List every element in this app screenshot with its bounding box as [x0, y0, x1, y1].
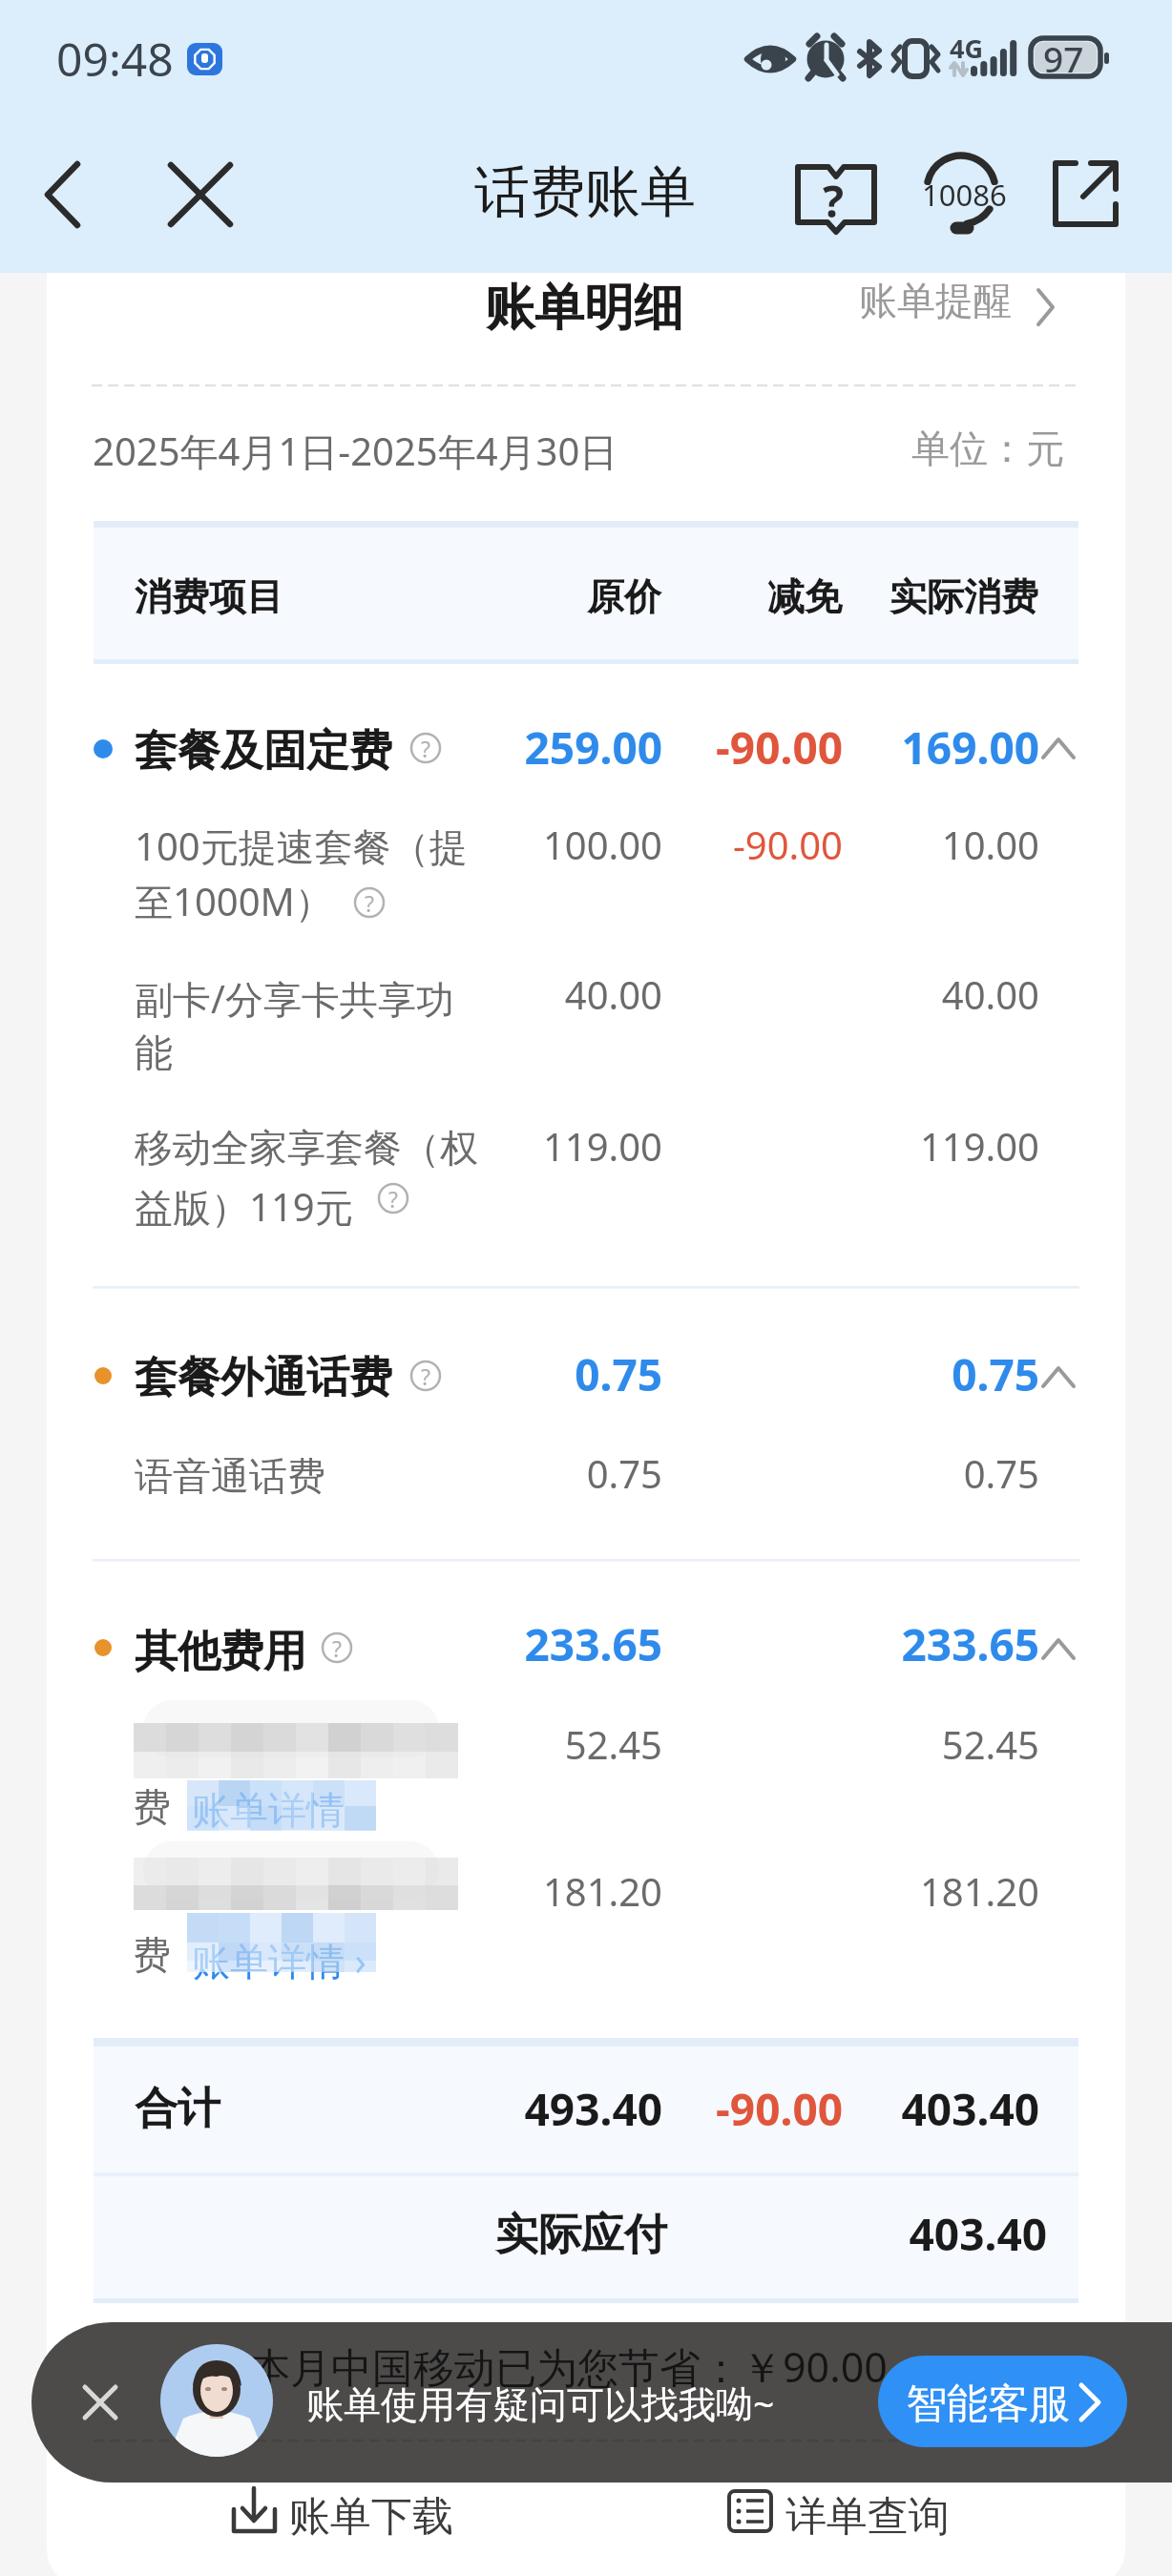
- staticText: 233.65: [524, 1614, 662, 1674]
- staticText: 减免: [767, 573, 842, 620]
- staticText: ?: [388, 1184, 398, 1213]
- staticText: 52.45: [941, 1718, 1039, 1770]
- staticText: 0.75: [963, 1447, 1039, 1499]
- staticText: 52.45: [564, 1718, 662, 1770]
- staticText: 403.40: [909, 2204, 1047, 2264]
- staticText: 09:48: [56, 28, 174, 90]
- staticText: 本月中国移动已为您节省：￥90.00: [249, 2338, 888, 2395]
- button[interactable]: [94, 1595, 1078, 1691]
- staticText: ?: [823, 171, 844, 231]
- staticText: 0.75: [952, 1344, 1039, 1404]
- staticText: 119.00: [919, 1120, 1039, 1172]
- staticText: 100元提速套餐（提: [135, 820, 468, 872]
- staticText: 合计: [135, 2082, 220, 2136]
- staticText: 其他费用: [135, 1625, 306, 1679]
- staticText: 套餐外通话费: [135, 1351, 392, 1405]
- staticText: 40.00: [941, 968, 1039, 1020]
- staticText: 原价: [587, 573, 661, 620]
- staticText: 详单查询: [785, 2491, 950, 2543]
- staticText: ?: [421, 1361, 430, 1390]
- staticText: ?: [421, 734, 430, 762]
- staticText: 话费账单: [474, 157, 696, 227]
- staticText: ?: [365, 888, 374, 917]
- staticText: 40.00: [564, 968, 662, 1020]
- staticText: 益版）119元: [135, 1180, 353, 1233]
- staticText: 移动全家享套餐（权: [135, 1124, 478, 1172]
- staticText: 账单详情: [192, 1786, 345, 1834]
- staticText: 233.65: [901, 1614, 1039, 1674]
- button[interactable]: 关闭提示 Close tip: [67, 2372, 134, 2435]
- button[interactable]: 分享 Share: [1046, 153, 1128, 237]
- button[interactable]: [716, 2479, 966, 2551]
- staticText: 账单提醒: [859, 277, 1012, 324]
- staticText: 套餐及固定费: [135, 724, 392, 779]
- staticText: 账单详情 ›: [192, 1934, 366, 1986]
- staticText: 2025年4月1日-2025年4月30日: [93, 425, 618, 477]
- staticText: ?: [332, 1633, 342, 1662]
- staticText: 单位：元: [911, 425, 1064, 472]
- staticText: 0.75: [575, 1344, 662, 1404]
- button[interactable]: 帮助 Help: [790, 151, 882, 240]
- staticText: 119.00: [542, 1120, 662, 1172]
- button[interactable]: [94, 1319, 1078, 1416]
- staticText: -90.00: [732, 819, 843, 870]
- staticText: 账单使用有疑问可以找我呦~: [306, 2378, 775, 2428]
- staticText: 智能客服: [906, 2379, 1070, 2430]
- button[interactable]: 客服热线 10086 Customer service: [914, 149, 1006, 240]
- staticText: 至1000M）: [135, 875, 333, 927]
- staticText: 97: [1043, 34, 1084, 82]
- button[interactable]: [220, 2479, 470, 2551]
- staticText: -90.00: [716, 2079, 843, 2139]
- button[interactable]: [849, 269, 1078, 338]
- button[interactable]: [185, 1776, 380, 1834]
- button[interactable]: [94, 689, 1078, 784]
- staticText: 10086: [922, 175, 1007, 215]
- staticText: 语音通话费: [135, 1452, 325, 1500]
- staticText: 4G: [950, 31, 983, 66]
- staticText: 费: [133, 1931, 171, 1979]
- staticText: 费: [133, 1783, 171, 1831]
- staticText: 493.40: [524, 2079, 662, 2139]
- staticText: 403.40: [901, 2079, 1039, 2139]
- button[interactable]: 返回 Back: [29, 151, 97, 239]
- staticText: 181.20: [919, 1865, 1039, 1917]
- button[interactable]: 关闭 Close: [160, 151, 241, 239]
- staticText: 消费项目: [135, 573, 283, 620]
- staticText: 账单明细: [485, 277, 683, 340]
- staticText: 能: [135, 1028, 173, 1076]
- staticText: 169.00: [901, 717, 1039, 778]
- staticText: 181.20: [542, 1865, 662, 1917]
- staticText: 账单下载: [289, 2491, 453, 2543]
- staticText: 实际消费: [889, 573, 1038, 620]
- button[interactable]: [878, 2356, 1127, 2447]
- staticText: -90.00: [716, 717, 843, 778]
- staticText: 10.00: [941, 819, 1039, 870]
- staticText: 实际应付: [495, 2208, 667, 2262]
- staticText: 0.75: [586, 1447, 662, 1499]
- button[interactable]: [185, 1925, 386, 1983]
- staticText: 副卡/分享卡共享功: [135, 972, 454, 1025]
- staticText: 259.00: [524, 717, 662, 778]
- staticText: 100.00: [542, 819, 662, 870]
